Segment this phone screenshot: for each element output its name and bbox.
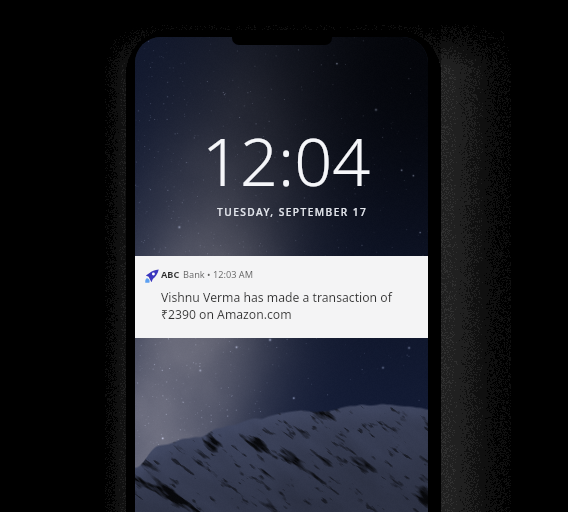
staticText: Bank • 12:03 AM	[183, 268, 254, 281]
button[interactable]: ABC	[135, 256, 428, 338]
staticText: ABC	[161, 268, 180, 281]
staticText: TUESDAY, SEPTEMBER 17	[217, 205, 368, 219]
staticText: 12:04	[202, 115, 371, 206]
staticText: Vishnu Verma has made a transaction of ₹…	[161, 289, 392, 323]
